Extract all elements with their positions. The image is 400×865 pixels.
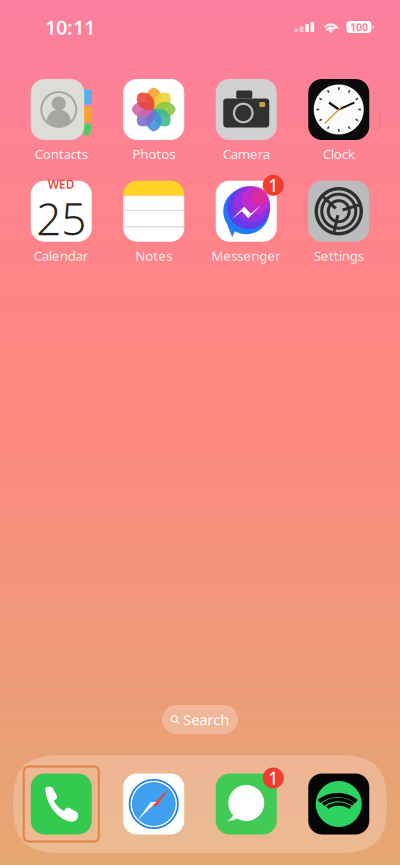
staticText: Settings <box>314 247 364 264</box>
staticText: WED <box>48 176 75 192</box>
button[interactable]: 1 <box>200 181 292 264</box>
staticText: Search <box>183 710 229 729</box>
staticText: 1 <box>268 766 278 789</box>
button[interactable]: Notes <box>107 181 200 264</box>
button[interactable]: Clock <box>292 79 385 163</box>
button[interactable] <box>292 765 385 843</box>
button[interactable]: Search <box>162 705 238 734</box>
staticText: Contacts <box>35 145 88 163</box>
button[interactable]: WED <box>15 181 107 264</box>
button[interactable]: Contacts <box>15 79 107 163</box>
button[interactable] <box>15 765 107 843</box>
staticText: 100 <box>350 20 368 34</box>
staticText: Calendar <box>34 247 89 264</box>
staticText: 25 <box>36 189 86 247</box>
staticText: Camera <box>223 145 270 163</box>
button[interactable]: Camera <box>200 79 292 163</box>
button[interactable] <box>107 765 200 843</box>
staticText: Clock <box>323 145 355 163</box>
staticText: Photos <box>132 145 175 163</box>
staticText: Messenger <box>211 247 281 264</box>
staticText: Notes <box>135 247 172 264</box>
button[interactable]: Settings <box>292 181 385 264</box>
button[interactable]: Photos <box>107 79 200 163</box>
button[interactable]: 1 <box>200 765 292 843</box>
staticText: 1 <box>268 174 278 197</box>
staticText: 10:11 <box>45 14 95 40</box>
